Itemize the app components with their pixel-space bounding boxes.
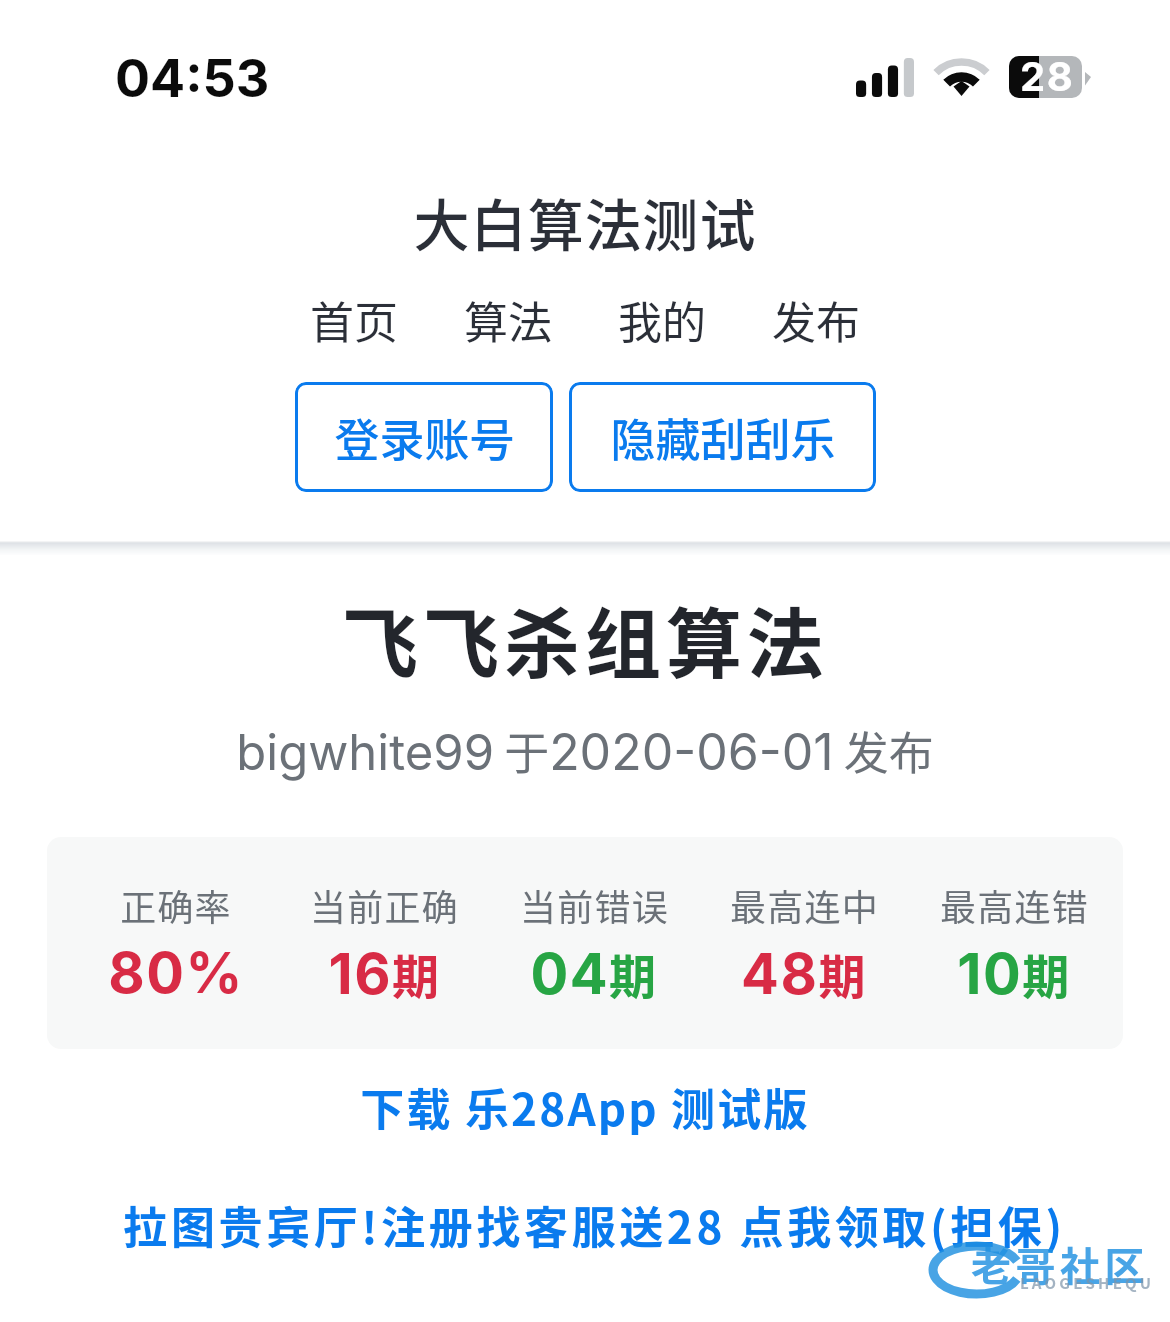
staticText: 大白算法测试	[413, 181, 757, 262]
staticText: 登录账号	[334, 405, 515, 470]
other: Cellular signal	[856, 58, 914, 97]
staticText: 80%	[108, 939, 244, 1007]
staticText: 10期	[957, 939, 1071, 1007]
staticText: 我的	[618, 288, 706, 352]
staticText: 48期	[741, 939, 867, 1007]
button[interactable]: 我的	[618, 288, 706, 352]
button[interactable]: 隐藏刮刮乐	[569, 382, 876, 492]
staticText: 老哥社区	[971, 1235, 1149, 1293]
staticText: 28	[1020, 52, 1075, 94]
staticText: 首页	[310, 288, 398, 352]
staticText: 发布	[772, 288, 860, 352]
button[interactable]: 下载 乐28App 测试版	[360, 1075, 810, 1139]
staticText: 04:53	[115, 47, 270, 110]
staticText: bigwhite99 于2020-06-01 发布	[236, 718, 934, 783]
staticText: 飞飞杀组算法	[342, 584, 828, 694]
staticText: 下载 乐28App 测试版	[360, 1075, 810, 1139]
staticText: 最高连中	[730, 879, 879, 931]
button[interactable]: 发布	[772, 288, 860, 352]
staticText: 拉图贵宾厅!注册找客服送28 点我领取(担保)	[123, 1193, 1066, 1257]
staticText: 当前正确	[310, 879, 459, 931]
staticText: 最高连错	[940, 879, 1089, 931]
staticText: 当前错误	[520, 879, 669, 931]
button[interactable]: 首页	[310, 288, 398, 352]
staticText: 算法	[464, 288, 552, 352]
other: Battery 28 percent	[1009, 56, 1091, 98]
button[interactable]: 算法	[464, 288, 552, 352]
staticText: 隐藏刮刮乐	[610, 405, 836, 470]
staticText: 正确率	[120, 879, 232, 931]
staticText: 04期	[530, 939, 658, 1007]
button[interactable]: 拉图贵宾厅!注册找客服送28 点我领取(担保)	[123, 1193, 1066, 1257]
button[interactable]: 登录账号	[295, 382, 553, 492]
staticText: LAOGESHEQU	[1020, 1272, 1155, 1294]
staticText: 16期	[328, 939, 441, 1007]
other: Wi-Fi	[930, 50, 994, 102]
